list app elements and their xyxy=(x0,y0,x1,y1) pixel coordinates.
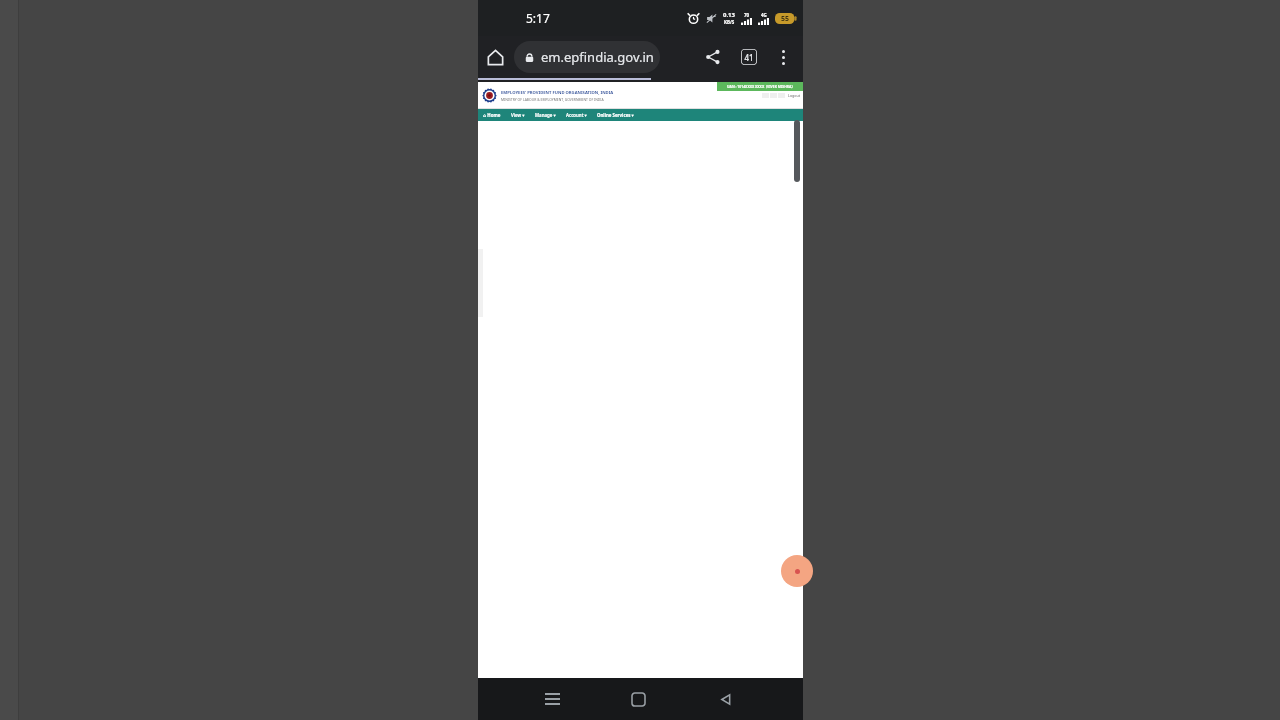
staticText: UAN : 1014XXXX XXXX (VIVEK MISHRA) xyxy=(727,84,793,89)
staticText: Account ▾ xyxy=(566,112,587,118)
staticText: KB/S xyxy=(724,19,735,25)
button[interactable]: Logout xyxy=(788,93,800,98)
button[interactable]: Online Services ▾ xyxy=(592,109,639,121)
button[interactable]: Share xyxy=(696,40,730,74)
staticText: ⌂ Home xyxy=(483,112,501,118)
staticText: 5:17 xyxy=(526,10,550,26)
staticText: 0.13 xyxy=(723,11,735,19)
button[interactable]: Home xyxy=(616,678,660,720)
staticText: Manage ▾ xyxy=(535,112,556,118)
staticText: MINISTRY OF LABOUR & EMPLOYMENT, GOVERNM… xyxy=(501,97,604,102)
button[interactable]: View ▾ xyxy=(506,109,530,121)
button[interactable]: Tabs, 41 open xyxy=(732,40,766,74)
button[interactable]: Back xyxy=(703,678,747,720)
staticText: Online Services ▾ xyxy=(597,112,634,118)
button[interactable]: Floating action xyxy=(781,555,813,587)
button[interactable]: Manage ▾ xyxy=(530,109,561,121)
button[interactable]: ⌂ Home xyxy=(478,109,506,121)
button[interactable]: Recent apps xyxy=(530,678,574,720)
staticText: View ▾ xyxy=(511,112,525,118)
button[interactable]: Account ▾ xyxy=(561,109,592,121)
button[interactable]: Home xyxy=(478,40,512,74)
button[interactable]: em.epfindia.gov.in xyxy=(514,41,660,73)
staticText: 70 xyxy=(744,12,750,18)
staticText: 55 xyxy=(781,14,790,24)
button[interactable]: More options xyxy=(767,41,799,73)
staticText: 4G xyxy=(761,12,767,18)
staticText: EMPLOYEES' PROVIDENT FUND ORGANISATION, … xyxy=(501,90,614,96)
staticText: 41 xyxy=(744,52,754,63)
staticText: em.epfindia.gov.in xyxy=(541,48,654,66)
